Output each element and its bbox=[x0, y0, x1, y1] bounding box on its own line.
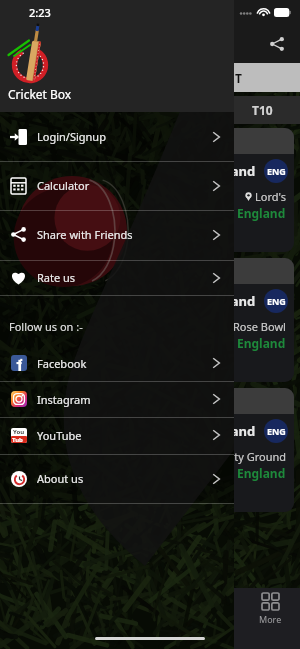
staticText: Follow us on :- bbox=[9, 319, 83, 334]
staticText: Fixtures bbox=[73, 613, 107, 625]
button[interactable]: Facebook bbox=[0, 345, 234, 381]
staticText: England bbox=[203, 162, 256, 180]
staticText: England bbox=[237, 205, 286, 221]
button[interactable]: TEST bbox=[150, 96, 225, 124]
button[interactable]: ODI bbox=[75, 96, 150, 124]
staticText: Cricket Box bbox=[8, 86, 72, 102]
staticText: Share with Friends bbox=[37, 227, 133, 242]
staticText: TOURNAMENT bbox=[156, 70, 242, 86]
staticText: Lord's bbox=[255, 189, 286, 204]
button[interactable]: Share with Friends bbox=[0, 210, 234, 259]
button[interactable]: You bbox=[0, 417, 234, 453]
staticText: County Ground bbox=[207, 449, 286, 464]
staticText: England bbox=[237, 465, 286, 481]
staticText: Tube bbox=[12, 436, 26, 443]
button[interactable]: Share bbox=[262, 29, 292, 59]
staticText: Instagram bbox=[37, 392, 91, 407]
staticText: More bbox=[259, 613, 282, 625]
button[interactable]: England bbox=[6, 128, 294, 252]
staticText: The Rose Bowl bbox=[211, 319, 286, 334]
staticText: England bbox=[203, 292, 256, 310]
staticText: ENG bbox=[267, 425, 286, 437]
staticText: ODI bbox=[101, 102, 124, 118]
staticText: ENG bbox=[267, 295, 286, 307]
staticText: Login/Signup bbox=[37, 129, 106, 144]
staticText: Facebook bbox=[37, 356, 87, 371]
button[interactable]: Calculator bbox=[0, 161, 234, 210]
button[interactable]: England bbox=[6, 388, 294, 512]
button[interactable]: About us bbox=[0, 454, 234, 503]
button[interactable]: More bbox=[240, 588, 300, 649]
staticText: T20 bbox=[27, 102, 48, 118]
staticText: About us bbox=[37, 471, 84, 486]
staticText: TEST bbox=[174, 102, 202, 118]
staticText: England bbox=[203, 422, 256, 440]
staticText: 2:23 bbox=[29, 5, 51, 20]
button[interactable]: TOURNAMENT bbox=[0, 63, 300, 92]
staticText: YouTube bbox=[37, 428, 82, 443]
button[interactable]: England bbox=[6, 258, 294, 382]
button[interactable]: T20 bbox=[0, 96, 75, 124]
staticText: Live bbox=[22, 613, 39, 625]
button[interactable]: Series bbox=[120, 588, 180, 649]
staticText: You bbox=[13, 428, 25, 436]
staticText: London bbox=[192, 206, 232, 221]
button[interactable]: News bbox=[180, 588, 240, 649]
staticText: News bbox=[198, 613, 222, 625]
staticText: Series bbox=[137, 613, 163, 625]
button[interactable]: Rate us bbox=[0, 260, 234, 295]
staticText: England bbox=[237, 335, 286, 351]
staticText: ENG bbox=[267, 165, 286, 177]
button[interactable]: Fixtures bbox=[60, 588, 120, 649]
button[interactable]: Login/Signup bbox=[0, 112, 234, 161]
staticText: Rate us bbox=[37, 270, 76, 285]
staticText: T10 bbox=[252, 102, 273, 118]
staticText: Bristol bbox=[198, 466, 232, 481]
staticText: Calculator bbox=[37, 178, 90, 193]
button[interactable]: T10 bbox=[225, 96, 300, 124]
button[interactable]: Live bbox=[0, 588, 60, 649]
button[interactable]: Instagram bbox=[0, 381, 234, 417]
